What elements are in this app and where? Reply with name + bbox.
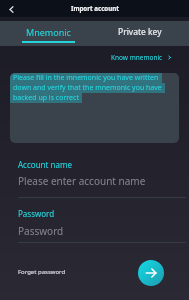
staticText: Please enter account name xyxy=(18,174,146,188)
button[interactable]: Next xyxy=(138,260,164,286)
staticText: Private key xyxy=(118,26,162,38)
button[interactable]: Please fill in the mnemonic you have wri… xyxy=(10,73,179,143)
button[interactable]: Mnemonic xyxy=(0,21,94,46)
staticText: down and verify that the mnemonic you ha… xyxy=(13,83,162,93)
button[interactable]: Back xyxy=(3,1,19,17)
button[interactable]: Private key xyxy=(94,21,189,46)
staticText: Mnemonic xyxy=(26,26,71,38)
staticText: Please fill in the mnemonic you have wri… xyxy=(13,73,159,83)
staticText: Know mnemonic xyxy=(111,53,163,62)
staticText: Account name xyxy=(18,159,72,170)
staticText: Import account xyxy=(71,4,119,12)
staticText: Password xyxy=(18,208,55,219)
staticText: backed up is correct xyxy=(13,93,79,103)
button[interactable]: Forget password xyxy=(18,268,66,276)
button[interactable]: Know mnemonic xyxy=(111,53,172,62)
staticText: Password xyxy=(18,224,64,238)
